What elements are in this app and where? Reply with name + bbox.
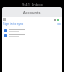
staticText: 9:41 Inbox [22, 2, 43, 7]
button[interactable] [2, 33, 62, 38]
button[interactable] [2, 28, 62, 33]
staticText: Accounts [23, 10, 41, 15]
staticText: Sign in to sync [3, 22, 24, 26]
